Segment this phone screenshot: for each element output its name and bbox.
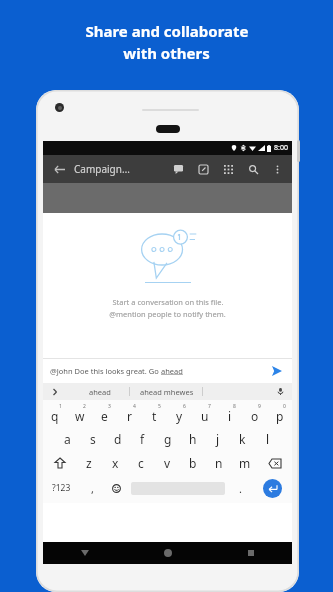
button[interactable]: y [167,403,192,427]
button[interactable]: e [92,403,117,427]
button[interactable]: q [43,403,67,427]
staticText: . [239,481,242,496]
button[interactable]: Voice input [274,385,287,398]
staticText: with others [123,43,210,63]
staticText: k [239,431,246,447]
button[interactable]: u [192,403,217,427]
staticText: 2 [83,403,86,410]
button[interactable]: f [130,427,155,451]
button[interactable]: Back [50,160,68,178]
staticText: Share and collaborate [85,21,249,41]
staticText: ahead mhewes [140,387,194,397]
staticText: i [228,408,232,424]
button[interactable]: d [105,427,130,451]
staticText: g [164,431,172,447]
button[interactable]: More options [269,161,285,177]
button[interactable]: . [228,475,252,501]
staticText: w [75,408,85,424]
button[interactable]: v [154,451,180,475]
button[interactable]: Recents [209,542,292,564]
button[interactable]: Emoji [104,475,128,501]
staticText: 7 [208,403,211,410]
button[interactable]: h [180,427,205,451]
staticText: u [201,408,209,424]
button[interactable]: Comments [170,161,186,177]
button[interactable]: b [180,451,206,475]
staticText: ahead [89,387,111,397]
staticText: t [152,408,157,424]
staticText: @John Doe this looks great. Go [50,366,161,376]
staticText: ahead [161,366,183,376]
button[interactable]: ?123 [43,475,80,501]
staticText: x [112,455,119,471]
staticText: d [114,431,122,447]
button[interactable]: Shift [43,451,76,475]
button[interactable]: Search [245,161,261,177]
button[interactable]: o [242,403,267,427]
button[interactable]: x [102,451,128,475]
button[interactable]: i [217,403,242,427]
button[interactable]: s [80,427,105,451]
staticText: 6 [183,403,186,410]
button[interactable]: Open in new [195,161,211,177]
button[interactable]: Home [126,542,209,564]
button[interactable]: j [205,427,230,451]
button[interactable]: Backspace [258,451,292,475]
staticText: l [266,431,270,447]
staticText: s [90,431,96,447]
button[interactable]: Apps [220,161,236,177]
staticText: c [138,455,144,471]
button[interactable]: , [80,475,104,501]
button[interactable]: t [142,403,167,427]
button[interactable]: ahead [89,387,111,397]
staticText: Start a conversation on this file. [112,297,224,307]
staticText: 5 [158,403,161,410]
button[interactable]: l [255,427,280,451]
staticText: y [176,408,183,424]
button[interactable]: ahead mhewes [140,387,194,397]
button[interactable]: @John Doe this looks great. Go [43,359,292,383]
button[interactable]: n [206,451,232,475]
button[interactable]: m [232,451,258,475]
button[interactable]: Send [269,363,285,379]
staticText: o [251,408,259,424]
staticText: h [189,431,197,447]
staticText: p [276,408,284,424]
staticText: 3 [108,403,111,410]
button[interactable]: p [267,403,292,427]
button[interactable]: Enter [252,475,292,501]
staticText: q [51,408,59,424]
staticText: 9 [258,403,261,410]
staticText: 1 [59,403,62,410]
staticText: a [64,431,71,447]
staticText: @mention people to notify them. [109,309,226,319]
staticText: b [189,455,197,471]
button[interactable]: c [128,451,154,475]
staticText: f [140,431,145,447]
staticText: Campaign… [74,162,130,176]
staticText: 8 [233,403,236,410]
staticText: r [127,408,132,424]
button[interactable]: r [117,403,142,427]
staticText: 4 [133,403,136,410]
staticText: m [239,455,251,471]
staticText: n [215,455,223,471]
button[interactable]: z [76,451,102,475]
staticText: 8:00 [274,143,288,153]
staticText: e [101,408,108,424]
staticText: v [164,455,171,471]
button[interactable]: a [55,427,80,451]
button[interactable]: w [67,403,92,427]
staticText: 0 [283,403,286,410]
button[interactable]: Back [43,542,126,564]
staticText: ?123 [52,482,71,494]
staticText: z [86,455,92,471]
button[interactable]: More suggestions [48,385,61,398]
button[interactable]: g [155,427,180,451]
staticText: j [216,431,220,447]
button[interactable]: k [230,427,255,451]
staticText: , [91,481,94,496]
